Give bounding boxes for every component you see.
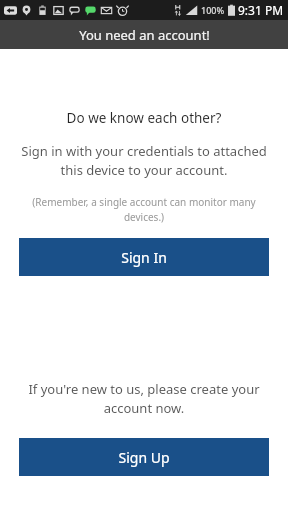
staticText: 100% bbox=[201, 4, 225, 16]
staticText: Sign In bbox=[121, 248, 167, 267]
button[interactable]: Sign Up bbox=[19, 438, 269, 476]
button[interactable]: Sign In bbox=[19, 238, 269, 276]
staticText: Do we know each other? bbox=[0, 109, 288, 127]
staticText: Sign Up bbox=[118, 448, 170, 467]
staticText: 9:31 PM bbox=[238, 2, 284, 18]
staticText: If you're new to us, please create your … bbox=[14, 380, 274, 417]
staticText: You need an account! bbox=[79, 26, 210, 44]
staticText: Sign in with your credentials to attache… bbox=[12, 142, 276, 179]
staticText: (Remember, a single account can monitor … bbox=[20, 195, 268, 224]
